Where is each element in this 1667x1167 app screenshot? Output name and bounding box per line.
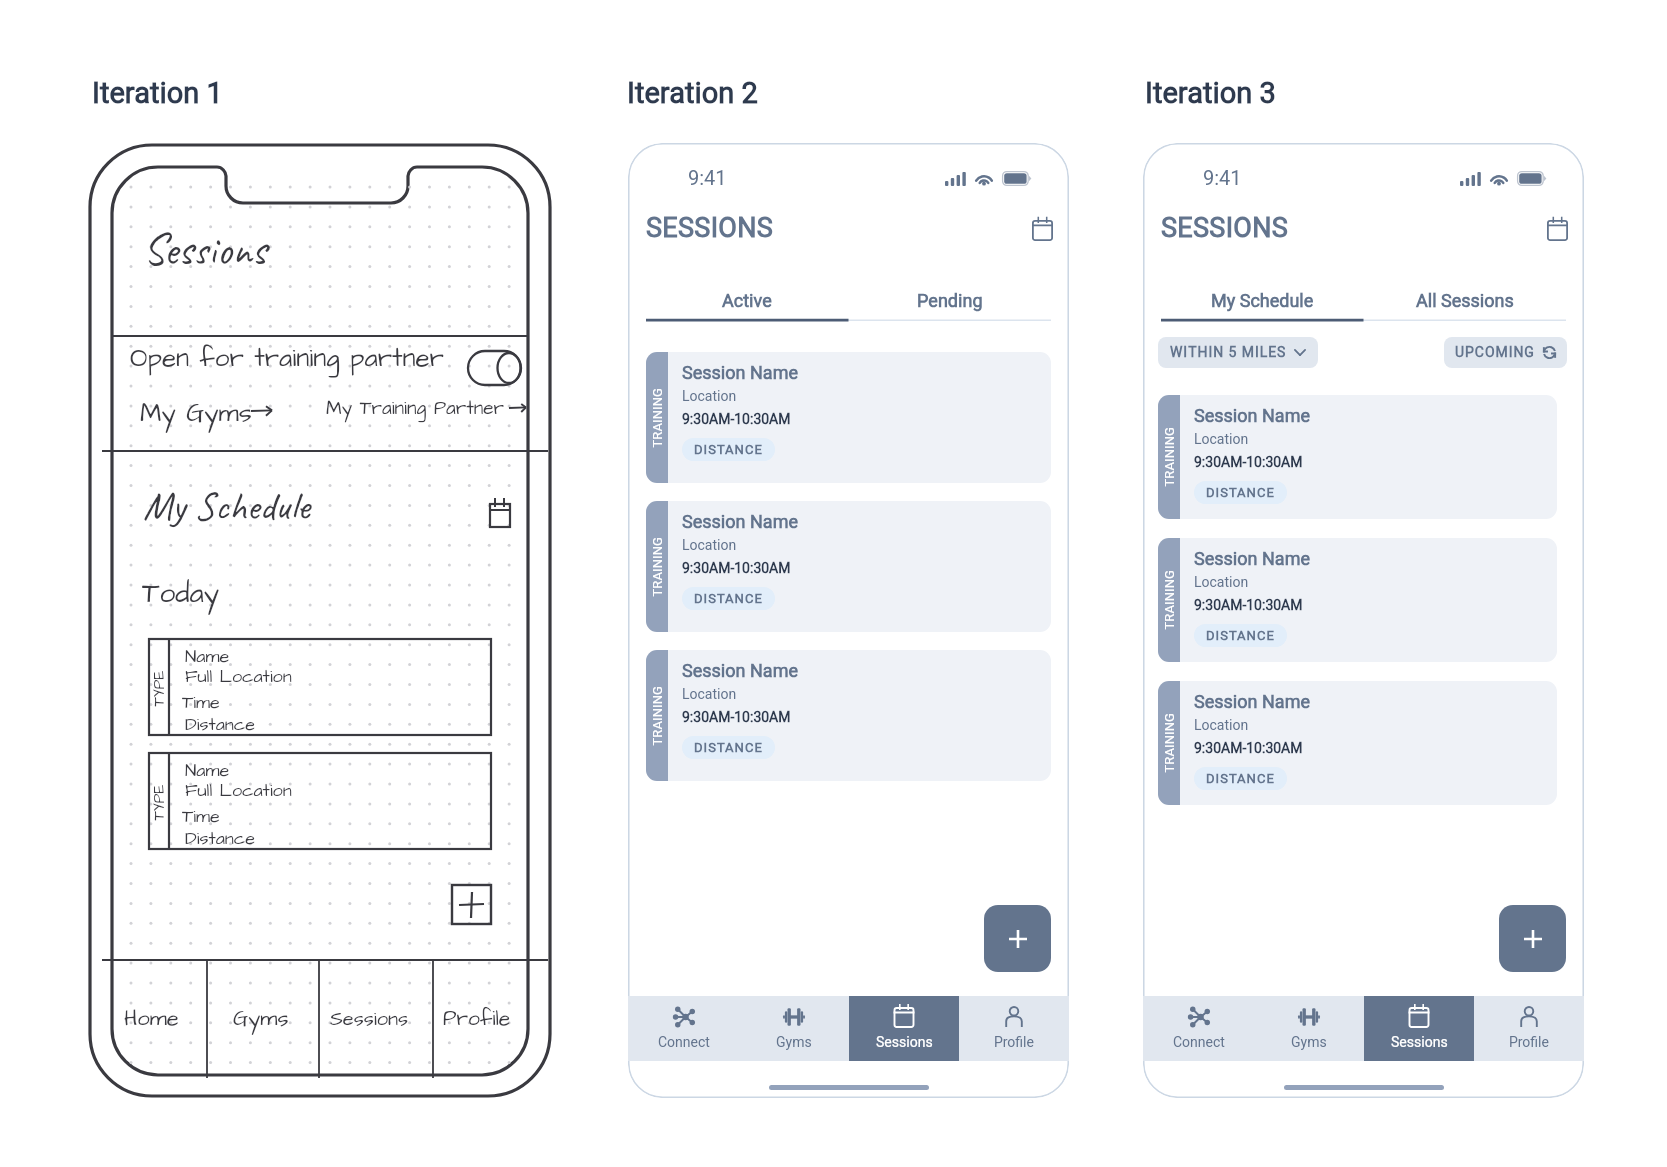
button[interactable]: Gyms (739, 996, 849, 1061)
staticText: Pending (917, 288, 983, 314)
button[interactable]: Add session (984, 905, 1051, 972)
staticText: TYPE (148, 670, 169, 706)
staticText: Connect (1173, 1032, 1225, 1053)
staticText: 9:30AM-10:30AM (682, 558, 791, 579)
staticText: Session Name (1194, 403, 1310, 429)
staticText: Home (124, 1003, 179, 1034)
staticText: SESSIONS (1161, 209, 1289, 249)
button[interactable]: DISTANCE (1194, 481, 1287, 504)
staticText: Time (182, 690, 220, 715)
staticText: TRAINING (1159, 712, 1178, 772)
button[interactable]: Profile (1474, 996, 1584, 1061)
staticText: TRAINING (647, 536, 666, 596)
staticText: Gyms (776, 1032, 812, 1053)
button[interactable]: Add session (1499, 905, 1566, 972)
staticText: Session Name (682, 509, 798, 535)
button[interactable]: UPCOMING (1444, 337, 1567, 368)
staticText: All Sessions (1416, 288, 1514, 314)
staticText: Iteration 2 (627, 73, 758, 116)
staticText: DISTANCE (1206, 769, 1275, 788)
staticText: WITHIN 5 MILES (1170, 342, 1287, 363)
staticText: TYPE (148, 784, 169, 820)
staticText: Location (1194, 715, 1249, 736)
staticText: Name (185, 644, 230, 669)
staticText: Profile (1509, 1032, 1549, 1053)
button[interactable]: Calendar (1024, 211, 1060, 247)
staticText: Iteration 3 (1145, 73, 1276, 116)
staticText: 9:41 (688, 164, 727, 193)
button[interactable]: TRAINING (1158, 538, 1557, 662)
staticText: TRAINING (647, 387, 666, 447)
button[interactable]: Active (646, 283, 848, 319)
button[interactable]: WITHIN 5 MILES (1158, 337, 1318, 368)
staticText: Distance (185, 712, 255, 737)
staticText: Session Name (1194, 546, 1310, 572)
staticText: DISTANCE (694, 738, 763, 757)
button[interactable]: Profile (959, 996, 1069, 1061)
button[interactable]: My Schedule (1161, 283, 1363, 319)
staticText: Location (1194, 572, 1249, 593)
button[interactable]: All Sessions (1363, 283, 1566, 319)
button[interactable]: TRAINING (646, 501, 1051, 632)
staticText: My Schedule (1211, 288, 1314, 314)
staticText: Distance (185, 826, 255, 851)
staticText: My Gyms (140, 395, 252, 431)
staticText: Location (682, 386, 737, 407)
button[interactable]: Connect (1143, 996, 1254, 1061)
button[interactable]: TRAINING (1158, 681, 1557, 805)
staticText: Full Location (185, 778, 292, 803)
staticText: Location (682, 684, 737, 705)
staticText: My Training Partner (326, 395, 505, 421)
button[interactable]: Calendar (1539, 211, 1575, 247)
staticText: Gyms (1291, 1032, 1327, 1053)
staticText: Sessions (876, 1032, 933, 1053)
staticText: Open for training partner (130, 340, 444, 376)
button[interactable]: Pending (848, 283, 1051, 319)
staticText: TRAINING (647, 685, 666, 745)
staticText: Profile (994, 1032, 1034, 1053)
staticText: DISTANCE (694, 440, 763, 459)
staticText: DISTANCE (1206, 626, 1275, 645)
staticText: Time (182, 804, 220, 829)
button[interactable]: Sessions (849, 996, 959, 1061)
button[interactable]: DISTANCE (682, 587, 775, 610)
button[interactable]: Sessions (1364, 996, 1474, 1061)
button[interactable]: Gyms (1254, 996, 1364, 1061)
staticText: 9:41 (1203, 164, 1242, 193)
staticText: 9:30AM-10:30AM (1194, 595, 1303, 616)
staticText: Sessions (143, 222, 267, 277)
staticText: Active (722, 288, 772, 314)
button[interactable]: DISTANCE (1194, 767, 1287, 790)
button[interactable]: DISTANCE (682, 438, 775, 461)
staticText: My Schedule (143, 481, 310, 531)
button[interactable]: DISTANCE (682, 736, 775, 759)
button[interactable]: Connect (628, 996, 739, 1061)
staticText: TRAINING (1159, 569, 1178, 629)
staticText: Sessions (1391, 1032, 1448, 1053)
staticText: Full Location (185, 664, 292, 689)
staticText: DISTANCE (1206, 483, 1275, 502)
button[interactable]: DISTANCE (1194, 624, 1287, 647)
staticText: Location (1194, 429, 1249, 450)
staticText: Today (142, 574, 220, 613)
button[interactable]: TRAINING (1158, 395, 1557, 519)
button[interactable]: TRAINING (646, 650, 1051, 781)
staticText: Connect (658, 1032, 710, 1053)
button[interactable]: TRAINING (646, 352, 1051, 483)
staticText: Location (682, 535, 737, 556)
staticText: Name (185, 758, 230, 783)
staticText: Iteration 1 (92, 73, 223, 116)
staticText: SESSIONS (646, 209, 774, 249)
staticText: TRAINING (1159, 426, 1178, 486)
staticText: 9:30AM-10:30AM (1194, 452, 1303, 473)
staticText: Gyms (233, 1003, 289, 1034)
staticText: Session Name (682, 360, 798, 386)
staticText: 9:30AM-10:30AM (1194, 738, 1303, 759)
staticText: Profile (443, 1004, 511, 1033)
staticText: Session Name (1194, 689, 1310, 715)
staticText: 9:30AM-10:30AM (682, 707, 791, 728)
staticText: 9:30AM-10:30AM (682, 409, 791, 430)
staticText: UPCOMING (1455, 342, 1535, 363)
staticText: Session Name (682, 658, 798, 684)
staticText: Sessions (330, 1005, 409, 1033)
